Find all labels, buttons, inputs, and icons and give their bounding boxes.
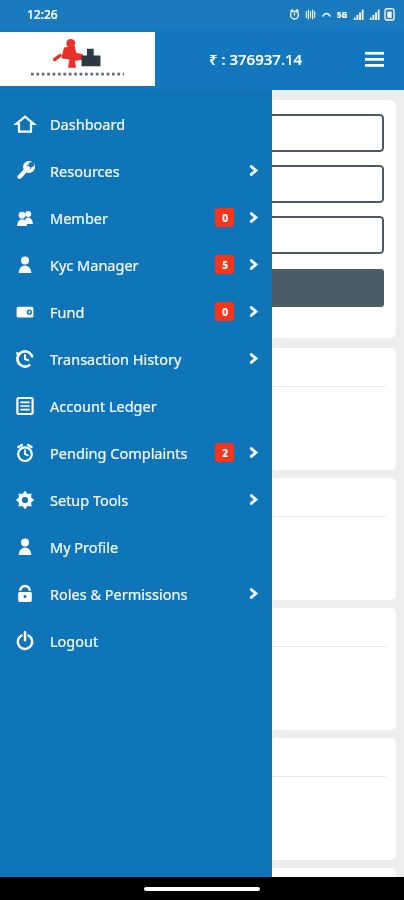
button[interactable] <box>8 738 396 860</box>
button[interactable] <box>20 114 384 152</box>
button[interactable] <box>8 478 396 600</box>
staticText: ₹ : 376937.14 <box>209 49 303 69</box>
button[interactable]: Dashboard <box>0 100 272 147</box>
staticText: 0 <box>222 211 228 225</box>
button[interactable]: Transaction History <box>0 335 272 382</box>
button[interactable] <box>8 868 396 900</box>
staticText: Logout <box>50 631 215 651</box>
staticText: Account Ledger <box>50 396 215 416</box>
staticText: 12:26 <box>27 6 58 22</box>
staticText: Transaction History <box>50 349 215 369</box>
staticText: Dashboard <box>50 114 215 134</box>
staticText: Roles & Permissions <box>50 584 215 604</box>
staticText: 0 <box>222 305 228 319</box>
button[interactable]: Pending Complaints <box>0 429 272 476</box>
staticText: 5 <box>222 258 228 272</box>
button[interactable]: Resources <box>0 147 272 194</box>
button[interactable]: Logout <box>0 617 272 664</box>
staticText: 2 <box>222 446 228 460</box>
button[interactable] <box>20 165 384 203</box>
button[interactable]: Member <box>0 194 272 241</box>
button[interactable]: Setup Tools <box>0 476 272 523</box>
button[interactable]: Kyc Manager <box>0 241 272 288</box>
button[interactable] <box>8 348 396 470</box>
staticText: Resources <box>50 161 215 181</box>
button[interactable]: SEARCH <box>20 269 384 307</box>
button[interactable] <box>20 216 384 254</box>
staticText: Pending Complaints <box>50 443 215 463</box>
staticText: Member <box>50 208 215 228</box>
button[interactable]: Logo <box>0 32 155 86</box>
button[interactable]: Roles & Permissions <box>0 570 272 617</box>
button[interactable] <box>8 608 396 730</box>
button[interactable]: Menu <box>358 43 390 75</box>
button[interactable]: My Profile <box>0 523 272 570</box>
staticText: Fund <box>50 302 215 322</box>
staticText: Setup Tools <box>50 490 215 510</box>
staticText: My Profile <box>50 537 215 557</box>
staticText: 5G <box>337 9 348 20</box>
button[interactable]: Account Ledger <box>0 382 272 429</box>
staticText: Kyc Manager <box>50 255 215 275</box>
button[interactable]: Fund <box>0 288 272 335</box>
